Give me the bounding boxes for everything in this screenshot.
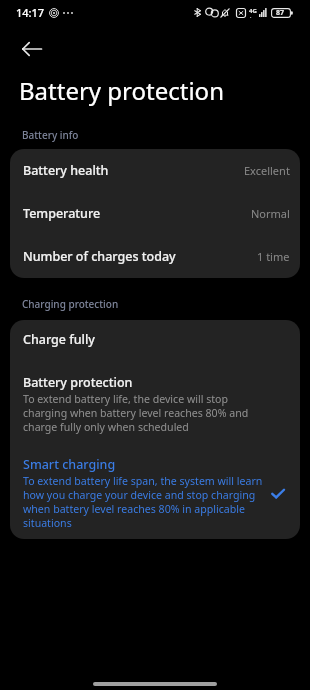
staticText: Battery health	[23, 162, 109, 179]
staticText: Smart charging	[23, 456, 116, 473]
staticText: Normal	[251, 206, 290, 221]
button[interactable]: Temperature	[10, 192, 300, 235]
staticText: Battery protection	[19, 74, 224, 107]
staticText: Number of charges today	[23, 248, 176, 265]
staticText: Excellent	[244, 163, 290, 178]
button[interactable]: Battery protection	[10, 348, 300, 434]
button[interactable]: Smart charging	[10, 434, 300, 539]
button[interactable]: Back	[15, 32, 49, 66]
staticText: To extend battery life span, the system …	[23, 474, 264, 530]
button[interactable]: Number of charges today	[10, 235, 300, 278]
button[interactable]: Battery health	[10, 149, 300, 192]
staticText: 1 time	[257, 249, 290, 264]
staticText: Charge fully	[23, 331, 95, 348]
button[interactable]: Charge fully	[10, 320, 300, 348]
staticText: Battery protection	[23, 374, 133, 391]
staticText: 87	[276, 8, 285, 18]
staticText: 4G+	[249, 7, 259, 18]
staticText: Temperature	[23, 205, 101, 222]
staticText: 14:17	[16, 5, 45, 20]
staticText: Charging protection	[22, 297, 119, 311]
staticText: Battery info	[22, 128, 79, 142]
staticText: To extend battery life, the device will …	[23, 392, 264, 434]
